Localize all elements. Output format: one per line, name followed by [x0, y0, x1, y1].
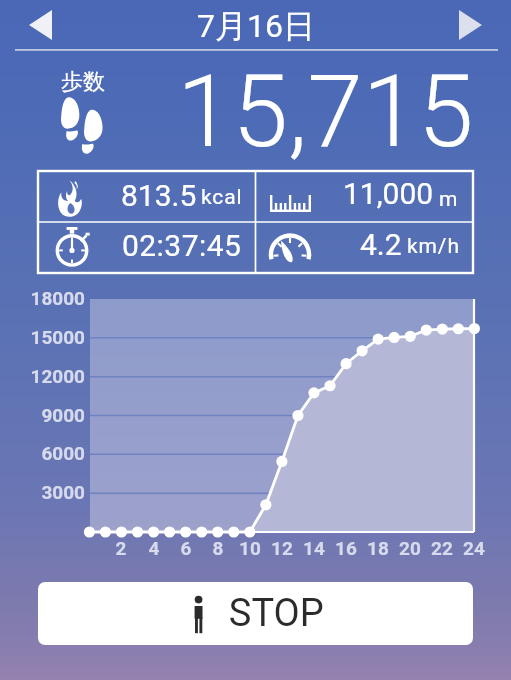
staticText: 6 [166, 537, 206, 559]
staticText: 6000 [0, 442, 85, 464]
staticText: 813.5 [121, 178, 197, 213]
staticText: 24 [454, 537, 494, 559]
staticText: kcal [201, 185, 243, 210]
staticText: 22 [422, 537, 462, 559]
staticText: STOP [210, 591, 324, 636]
button[interactable]: Calories 813.5 kcal [38, 171, 255, 222]
staticText: 4.2 [360, 227, 402, 262]
staticText: 4 [134, 537, 174, 559]
staticText: 15,715 [177, 53, 474, 170]
staticText: 14 [294, 537, 334, 559]
button[interactable]: STOP [38, 582, 473, 645]
staticText: 18 [358, 537, 398, 559]
staticText: km/h [407, 234, 460, 259]
staticText: 16 [326, 537, 366, 559]
staticText: 15000 [0, 326, 85, 348]
staticText: 歩数 [61, 68, 105, 96]
button[interactable]: Previous day [20, 4, 62, 46]
staticText: 18000 [0, 287, 85, 309]
staticText: m [439, 187, 459, 212]
button[interactable]: Next day [450, 4, 492, 46]
staticText: 9000 [0, 404, 85, 426]
staticText: 8 [198, 537, 238, 559]
staticText: 2 [101, 537, 141, 559]
staticText: 3000 [0, 481, 85, 503]
staticText: 11,000 [343, 176, 434, 211]
button[interactable]: Distance 11,000 m [255, 171, 473, 222]
staticText: 12000 [0, 365, 85, 387]
staticText: 12 [262, 537, 302, 559]
button[interactable]: Speed 4.2 km/h [255, 222, 473, 273]
button[interactable]: Duration 02:37:45 [38, 222, 255, 273]
staticText: 02:37:45 [122, 228, 242, 263]
staticText: 7月16日 [197, 6, 315, 46]
staticText: 10 [230, 537, 270, 559]
staticText: 20 [390, 537, 430, 559]
